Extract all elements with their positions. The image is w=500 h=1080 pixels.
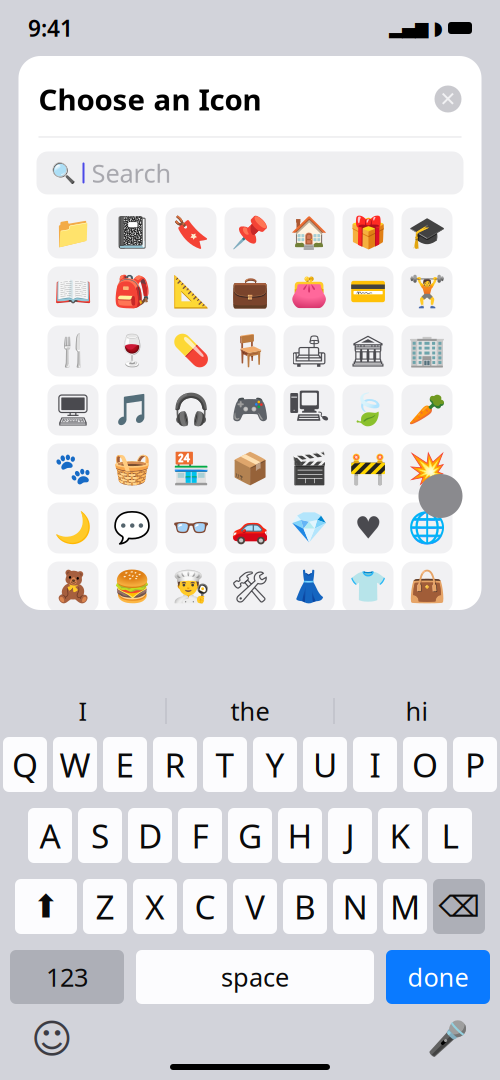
button[interactable]: 🏢 bbox=[401, 325, 452, 376]
button[interactable]: 🏛 bbox=[342, 325, 393, 376]
button[interactable]: 🍷 bbox=[106, 325, 157, 376]
button[interactable]: 📓 bbox=[106, 207, 157, 258]
button[interactable]: 👕 bbox=[342, 561, 393, 612]
button[interactable]: 🥕 bbox=[401, 384, 452, 435]
staticText: 💬 bbox=[113, 510, 151, 545]
staticText: I bbox=[78, 694, 87, 728]
button[interactable]: 🏋 bbox=[401, 266, 452, 317]
staticText: 🎧 bbox=[172, 392, 210, 427]
staticText: Search bbox=[91, 156, 171, 190]
button[interactable]: 💥 bbox=[401, 443, 452, 494]
button[interactable]: J bbox=[328, 808, 372, 863]
button[interactable]: K bbox=[378, 808, 422, 863]
button[interactable]: H bbox=[278, 808, 322, 863]
staticText: Choose an Icon bbox=[38, 79, 261, 118]
button[interactable]: 🚗 bbox=[224, 502, 275, 553]
button[interactable]: U bbox=[303, 737, 347, 792]
button[interactable]: Emoji keyboard bbox=[24, 1017, 80, 1061]
staticText: 📓 bbox=[113, 215, 151, 250]
button[interactable]: 📌 bbox=[224, 207, 275, 258]
staticText: 👛 bbox=[290, 274, 328, 309]
button[interactable]: P bbox=[453, 737, 497, 792]
button[interactable]: 🍃 bbox=[342, 384, 393, 435]
button[interactable]: the bbox=[166, 689, 333, 733]
button[interactable]: ⌫ bbox=[433, 879, 485, 934]
button[interactable]: Z bbox=[83, 879, 127, 934]
button[interactable]: 👓 bbox=[165, 502, 216, 553]
button[interactable]: 💎 bbox=[283, 502, 334, 553]
button[interactable]: N bbox=[333, 879, 377, 934]
button[interactable]: ♥ bbox=[342, 502, 393, 553]
button[interactable]: L bbox=[428, 808, 472, 863]
button[interactable]: 💼 bbox=[224, 266, 275, 317]
button[interactable]: Y bbox=[253, 737, 297, 792]
button[interactable]: hi bbox=[334, 689, 499, 733]
button[interactable]: 💳 bbox=[342, 266, 393, 317]
button[interactable]: Q bbox=[3, 737, 47, 792]
staticText: 🏠 bbox=[290, 215, 328, 250]
button[interactable]: 👗 bbox=[283, 561, 334, 612]
button[interactable]: B bbox=[283, 879, 327, 934]
button[interactable]: 🧸 bbox=[47, 561, 98, 612]
button[interactable]: 📁 bbox=[47, 207, 98, 258]
button[interactable]: 💊 bbox=[165, 325, 216, 376]
button[interactable]: Dictation bbox=[420, 1017, 476, 1061]
button[interactable]: 🏪 bbox=[165, 443, 216, 494]
button[interactable]: D bbox=[128, 808, 172, 863]
button[interactable]: I bbox=[0, 689, 165, 733]
button[interactable]: 👨‍🍳 bbox=[165, 561, 216, 612]
button[interactable]: 🧺 bbox=[106, 443, 157, 494]
button[interactable]: 🍴 bbox=[47, 325, 98, 376]
button[interactable]: 📖 bbox=[47, 266, 98, 317]
button[interactable]: S bbox=[78, 808, 122, 863]
button[interactable]: 🎧 bbox=[165, 384, 216, 435]
button[interactable]: C bbox=[183, 879, 227, 934]
button[interactable]: 🖳 bbox=[283, 384, 334, 435]
button[interactable]: 🎮 bbox=[224, 384, 275, 435]
button[interactable]: 🏠 bbox=[283, 207, 334, 258]
button[interactable]: O bbox=[403, 737, 447, 792]
button[interactable]: 🎵 bbox=[106, 384, 157, 435]
button[interactable]: 📐 bbox=[165, 266, 216, 317]
staticText: space bbox=[221, 960, 289, 994]
button[interactable]: 🎁 bbox=[342, 207, 393, 258]
staticText: 👨‍🍳 bbox=[172, 569, 210, 604]
button[interactable]: 🛋 bbox=[283, 325, 334, 376]
button[interactable]: 🚧 bbox=[342, 443, 393, 494]
button[interactable]: ⬆ bbox=[15, 879, 77, 934]
button[interactable]: V bbox=[233, 879, 277, 934]
button[interactable]: G bbox=[228, 808, 272, 863]
button[interactable]: 👛 bbox=[283, 266, 334, 317]
button[interactable]: 🍔 bbox=[106, 561, 157, 612]
button[interactable]: space bbox=[136, 950, 374, 1004]
button[interactable]: 🖥 bbox=[47, 384, 98, 435]
button[interactable]: 🌐 bbox=[401, 502, 452, 553]
button[interactable]: 💬 bbox=[106, 502, 157, 553]
button[interactable]: M bbox=[383, 879, 427, 934]
button[interactable]: F bbox=[178, 808, 222, 863]
button[interactable]: done bbox=[386, 950, 490, 1004]
button[interactable]: 🐾 bbox=[47, 443, 98, 494]
button[interactable]: E bbox=[103, 737, 147, 792]
staticText: 🛠 bbox=[230, 569, 269, 604]
button[interactable]: 🔖 bbox=[165, 207, 216, 258]
button[interactable]: W bbox=[53, 737, 97, 792]
button[interactable]: T bbox=[203, 737, 247, 792]
button[interactable]: I bbox=[353, 737, 397, 792]
button[interactable]: 🔍 bbox=[36, 151, 463, 194]
button[interactable]: 🛠 bbox=[224, 561, 275, 612]
button[interactable]: X bbox=[133, 879, 177, 934]
button[interactable]: 123 bbox=[10, 950, 124, 1004]
button[interactable]: A bbox=[28, 808, 72, 863]
button[interactable]: Close bbox=[434, 85, 461, 112]
button[interactable]: 🎬 bbox=[283, 443, 334, 494]
button[interactable]: R bbox=[153, 737, 197, 792]
button[interactable]: 👜 bbox=[401, 561, 452, 612]
button[interactable]: 🌙 bbox=[47, 502, 98, 553]
button[interactable]: 🪑 bbox=[224, 325, 275, 376]
staticText: 🖳 bbox=[288, 385, 329, 435]
button[interactable]: 🎒 bbox=[106, 266, 157, 317]
button[interactable]: 📦 bbox=[224, 443, 275, 494]
staticText: B bbox=[294, 884, 316, 929]
button[interactable]: 🎓 bbox=[401, 207, 452, 258]
